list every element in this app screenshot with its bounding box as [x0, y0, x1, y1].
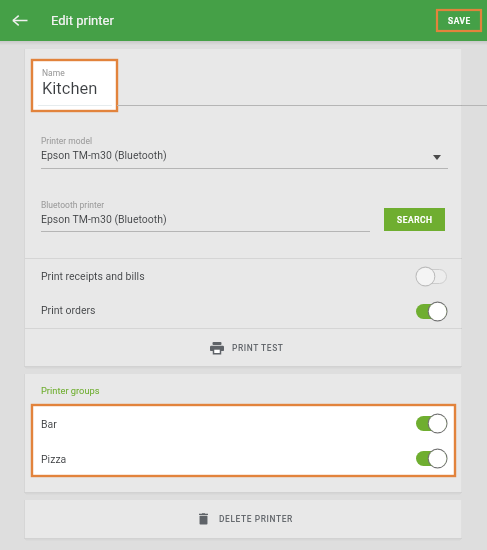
staticText: DELETE PRINTER — [219, 514, 293, 524]
button[interactable]: SEARCH — [384, 208, 445, 231]
button[interactable]: SAVE — [437, 10, 481, 31]
staticText: SAVE — [448, 16, 471, 26]
button[interactable]: DELETE PRINTER — [25, 500, 462, 538]
staticText: PRINT TEST — [232, 343, 284, 353]
button[interactable]: Back — [0, 0, 40, 41]
button[interactable]: PRINT TEST — [25, 329, 462, 366]
staticText: Name — [42, 68, 65, 78]
button[interactable]: Print orders — [41, 294, 447, 328]
staticText: Print orders — [41, 304, 96, 316]
staticText: Edit printer — [51, 13, 114, 28]
button[interactable]: Bar — [41, 406, 447, 441]
staticText: Pizza — [41, 453, 67, 465]
staticText: SEARCH — [397, 215, 433, 225]
staticText: Epson TM-m30 (Bluetooth) — [41, 213, 167, 225]
staticText: Epson TM-m30 (Bluetooth) — [41, 149, 167, 161]
button[interactable]: Print receipts and bills — [41, 259, 447, 294]
staticText: Bar — [41, 418, 57, 430]
staticText: Bluetooth printer — [41, 200, 105, 210]
staticText: Printer model — [41, 136, 92, 146]
staticText: Kitchen — [42, 79, 98, 98]
staticText: Print receipts and bills — [41, 270, 145, 282]
button[interactable]: Pizza — [41, 441, 447, 476]
staticText: Printer groups — [41, 385, 100, 396]
